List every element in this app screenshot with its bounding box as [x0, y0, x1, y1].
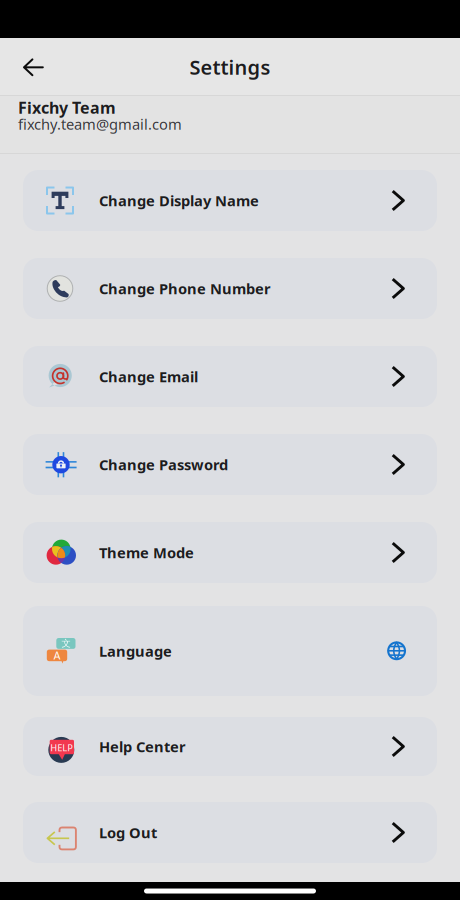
- staticText: Change Display Name: [99, 191, 259, 210]
- staticText: Log Out: [99, 823, 157, 842]
- staticText: Language: [99, 641, 172, 661]
- staticText: Change Password: [99, 455, 228, 474]
- staticText: Theme Mode: [99, 543, 194, 562]
- button[interactable]: Log Out: [23, 802, 437, 863]
- staticText: fixchy.team@gmail.com: [18, 114, 182, 134]
- staticText: HELP: [50, 741, 73, 754]
- staticText: Change Phone Number: [99, 279, 271, 298]
- button[interactable]: Change Password: [23, 434, 437, 495]
- staticText: 文: [61, 638, 70, 649]
- button[interactable]: Theme Mode: [23, 522, 437, 583]
- staticText: Settings: [189, 54, 270, 80]
- staticText: Help Center: [99, 737, 186, 756]
- staticText: Fixchy Team: [18, 97, 116, 118]
- button[interactable]: Change Phone Number: [23, 258, 437, 319]
- button[interactable]: 文: [23, 606, 437, 696]
- button[interactable]: HELP: [23, 717, 437, 776]
- button[interactable]: Change Email: [23, 346, 437, 407]
- button[interactable]: Back: [12, 47, 58, 87]
- button[interactable]: Change Display Name: [23, 170, 437, 231]
- staticText: A: [53, 648, 60, 662]
- staticText: Change Email: [99, 367, 198, 386]
